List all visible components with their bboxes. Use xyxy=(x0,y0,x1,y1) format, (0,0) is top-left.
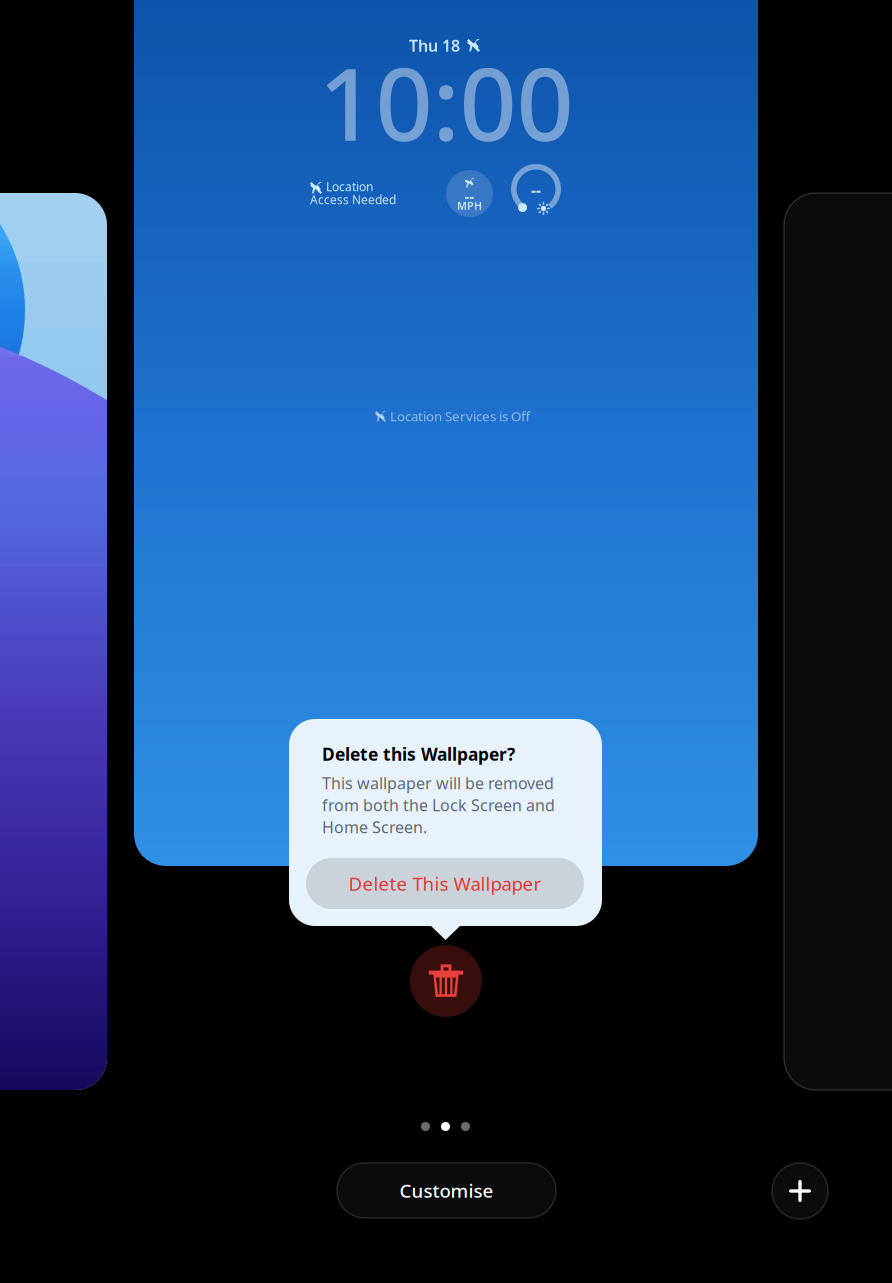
button[interactable]: Customise xyxy=(337,1163,556,1218)
staticText: Delete This Wallpaper xyxy=(348,871,541,896)
staticText: Access Needed xyxy=(310,191,396,207)
staticText: -- xyxy=(464,186,474,206)
button[interactable]: Delete wallpaper xyxy=(410,945,482,1017)
button[interactable]: Delete This Wallpaper xyxy=(306,858,584,909)
staticText: Thu 18 xyxy=(409,35,460,56)
staticText: This wallpaper will be removed xyxy=(322,772,554,794)
staticText: Location Services is Off xyxy=(390,407,530,425)
staticText: 10:00 xyxy=(318,36,573,168)
staticText: MPH xyxy=(457,198,482,213)
staticText: -- xyxy=(531,179,541,200)
staticText: from both the Lock Screen and xyxy=(322,794,555,816)
staticText: Home Screen. xyxy=(322,816,427,838)
staticText: Location xyxy=(326,178,373,194)
staticText: Customise xyxy=(399,1178,493,1203)
staticText: Delete this Wallpaper? xyxy=(322,742,515,765)
button[interactable]: Add wallpaper xyxy=(772,1163,828,1219)
